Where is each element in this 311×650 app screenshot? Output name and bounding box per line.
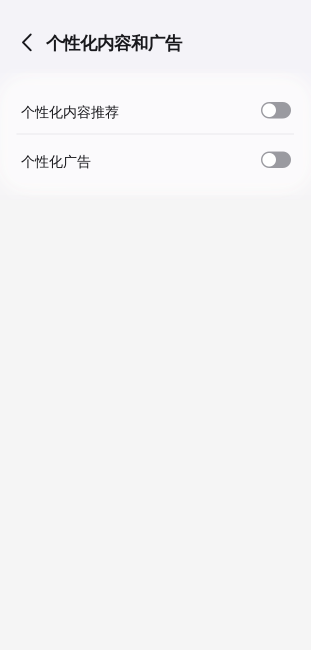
staticText: 个性化广告 [21, 153, 91, 170]
button[interactable]: 个性化内容推荐 [8, 85, 303, 133]
button[interactable]: 个性化广告 [8, 134, 303, 183]
staticText: 个性化内容和广告 [46, 33, 182, 54]
staticText: 个性化内容推荐 [21, 103, 119, 121]
button[interactable]: 返回 [9, 17, 45, 67]
